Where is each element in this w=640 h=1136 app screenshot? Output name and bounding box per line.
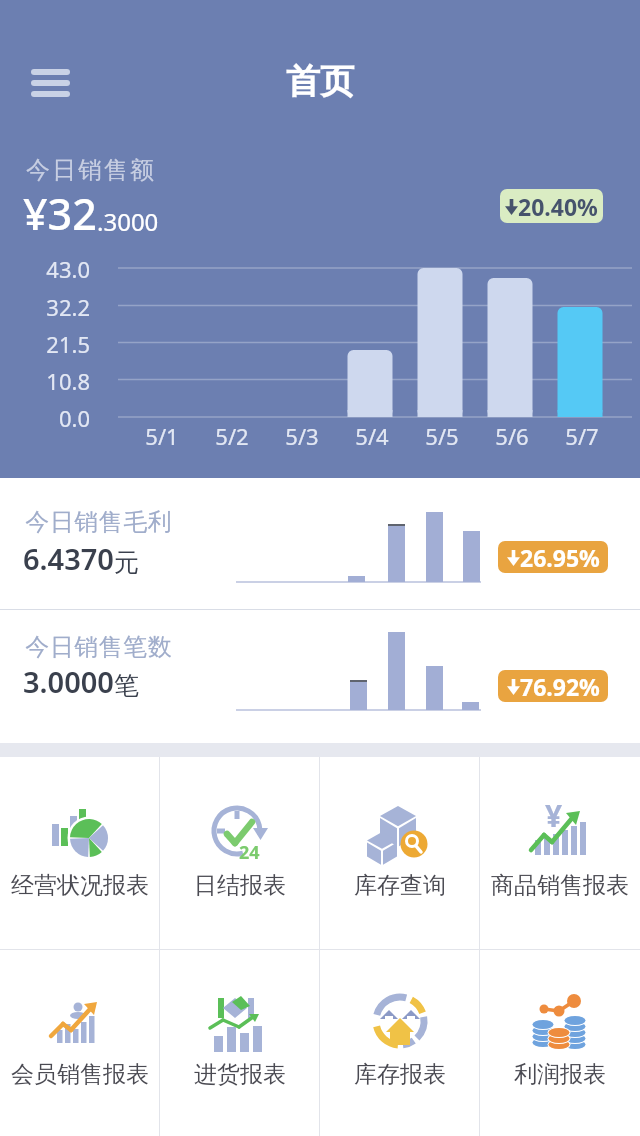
staticText: 5/1: [127, 421, 197, 451]
staticText: 利润报表: [480, 1060, 640, 1089]
staticText: 今日销售毛利: [25, 507, 172, 537]
staticText: 21.5: [30, 329, 90, 359]
staticText: 进货报表: [160, 1060, 320, 1089]
staticText: 10.8: [30, 366, 90, 396]
staticText: 今日销售额: [25, 155, 155, 185]
staticText: 5/3: [267, 421, 337, 451]
staticText: 26.95%: [520, 542, 600, 573]
staticText: 5/2: [197, 421, 267, 451]
staticText: 会员销售报表: [0, 1060, 160, 1089]
staticText: 32.2: [30, 292, 90, 322]
staticText: 今日销售笔数: [25, 632, 172, 662]
staticText: 20.40%: [518, 191, 598, 222]
staticText: 经营状况报表: [0, 871, 160, 900]
staticText: 笔: [114, 670, 139, 701]
staticText: 5/5: [407, 421, 477, 451]
staticText: 3.0000: [23, 662, 114, 701]
staticText: 日结报表: [160, 871, 320, 900]
staticText: 0.0: [30, 403, 90, 433]
staticText: 5/7: [547, 421, 617, 451]
staticText: 76.92%: [520, 671, 600, 702]
staticText: 5/6: [477, 421, 547, 451]
staticText: ¥: [545, 795, 563, 836]
staticText: 5/4: [337, 421, 407, 451]
staticText: 6.4370: [23, 539, 114, 578]
staticText: 24: [239, 840, 260, 865]
staticText: 库存报表: [320, 1060, 480, 1089]
staticText: 43.0: [30, 254, 90, 284]
staticText: .3000: [97, 205, 159, 238]
staticText: 首页: [286, 60, 354, 103]
staticText: ¥32: [23, 184, 97, 243]
staticText: 商品销售报表: [480, 871, 640, 900]
staticText: 元: [114, 547, 139, 578]
staticText: 库存查询: [320, 871, 480, 900]
